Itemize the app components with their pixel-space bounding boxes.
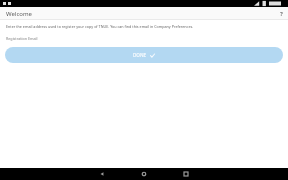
staticText: DONE <box>133 52 147 58</box>
button[interactable]: Home <box>138 168 150 180</box>
button[interactable]: DONE <box>5 47 283 63</box>
button[interactable]: Recent apps <box>180 168 192 180</box>
staticText: ? <box>280 10 283 18</box>
staticText: Welcome <box>6 10 32 18</box>
staticText: Registration Email <box>6 36 38 41</box>
staticText: Enter the email address used to register… <box>6 24 282 29</box>
button[interactable]: Back <box>96 168 108 180</box>
button[interactable]: Help <box>275 7 288 20</box>
